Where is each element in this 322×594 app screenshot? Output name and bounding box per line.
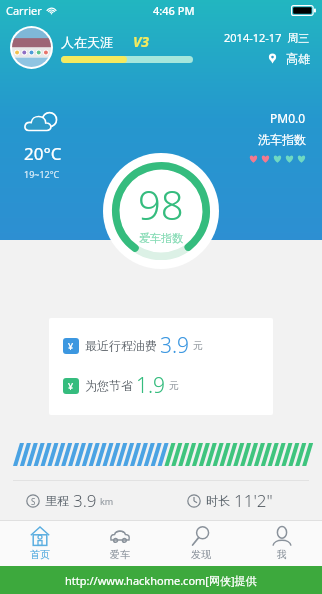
staticText: 首页 [30,548,50,561]
staticText: 1.9 [136,371,166,400]
staticText: ¥ [68,340,74,352]
button[interactable]: 爱车 [80,520,160,566]
staticText: 我 [277,548,287,561]
button[interactable]: 发现 [160,520,241,566]
staticText: 发现 [191,548,211,561]
staticText: V3 [133,32,149,51]
staticText: 最近行程油费 [85,338,157,353]
staticText: 11'2" [234,489,273,512]
button[interactable]: 我 [241,520,322,566]
staticText: 19~12°C [24,168,60,180]
staticText: km [100,495,114,507]
staticText: 为您节省 [85,378,133,393]
staticText: ¥ [68,380,74,392]
staticText: PM0.0 [270,110,306,126]
staticText: 元 [193,339,203,352]
staticText: 20°C [24,142,62,165]
staticText: Carrier [6,3,42,18]
staticText: 人在天涯 [61,34,113,50]
staticText: 元 [169,379,179,392]
staticText: 98 [138,177,184,231]
staticText: 3.9 [73,489,97,512]
staticText: 洗车指数 [258,132,306,147]
staticText: S [31,496,36,507]
button[interactable]: 首页 [0,520,80,566]
staticText: 3.9 [160,331,190,360]
staticText: 爱车 [110,548,130,561]
staticText: 时长 [206,493,230,508]
staticText: 高雄 [286,51,310,66]
staticText: 2014-12-17 周三 [224,30,310,45]
button[interactable]: Profile avatar [12,28,51,67]
staticText: 4:46 PM [153,3,195,18]
button[interactable]: ¥ [49,318,273,415]
staticText: 爱车指数 [139,231,183,245]
staticText: 里程 [45,493,69,508]
staticText: http://www.hackhome.com[网侠]提供 [65,573,257,588]
